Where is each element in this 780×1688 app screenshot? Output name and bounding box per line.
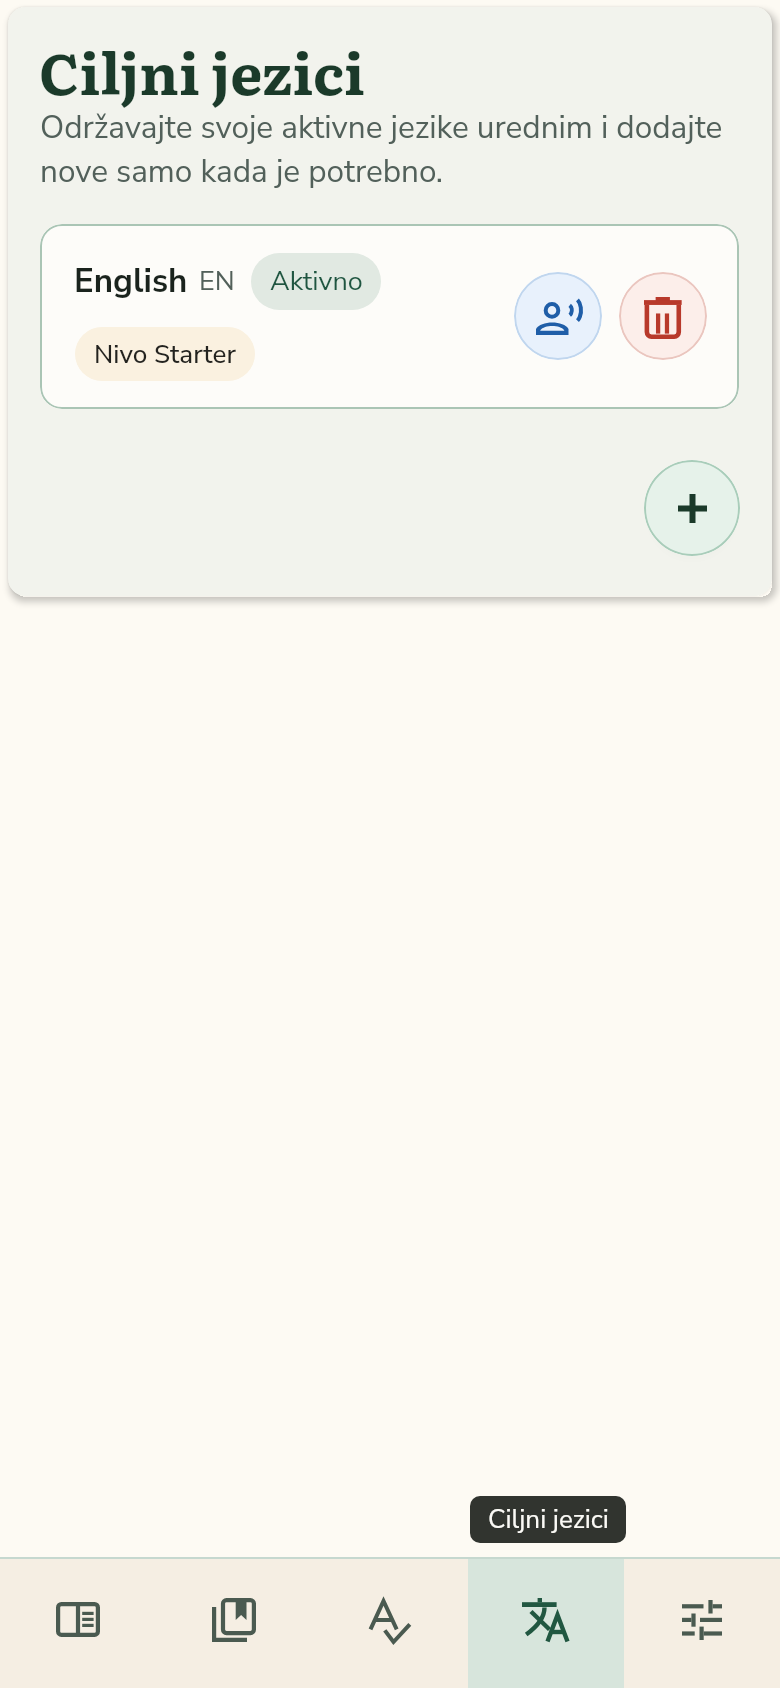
button[interactable]: English [40,224,739,409]
staticText: Aktivno [270,263,363,300]
button[interactable]: Aktivno [251,253,381,310]
staticText: EN [199,263,235,300]
staticText: Ciljni jezici [488,1502,609,1537]
button[interactable]: Pronunciation [514,272,602,360]
button[interactable]: Settings [624,1559,780,1688]
button[interactable]: Add language [644,460,740,556]
button[interactable]: Nivo Starter [75,327,255,381]
button[interactable]: Reader [0,1559,156,1688]
button[interactable]: Vocabulary [312,1559,468,1688]
staticText: English [74,259,188,304]
staticText: Održavajte svoje aktivne jezike urednim … [40,106,740,193]
button[interactable]: Ciljni jezici [468,1559,624,1688]
staticText: Ciljni jezici [39,28,365,113]
staticText: Nivo Starter [94,337,236,372]
button[interactable]: Delete [619,272,707,360]
button[interactable]: Library [156,1559,312,1688]
